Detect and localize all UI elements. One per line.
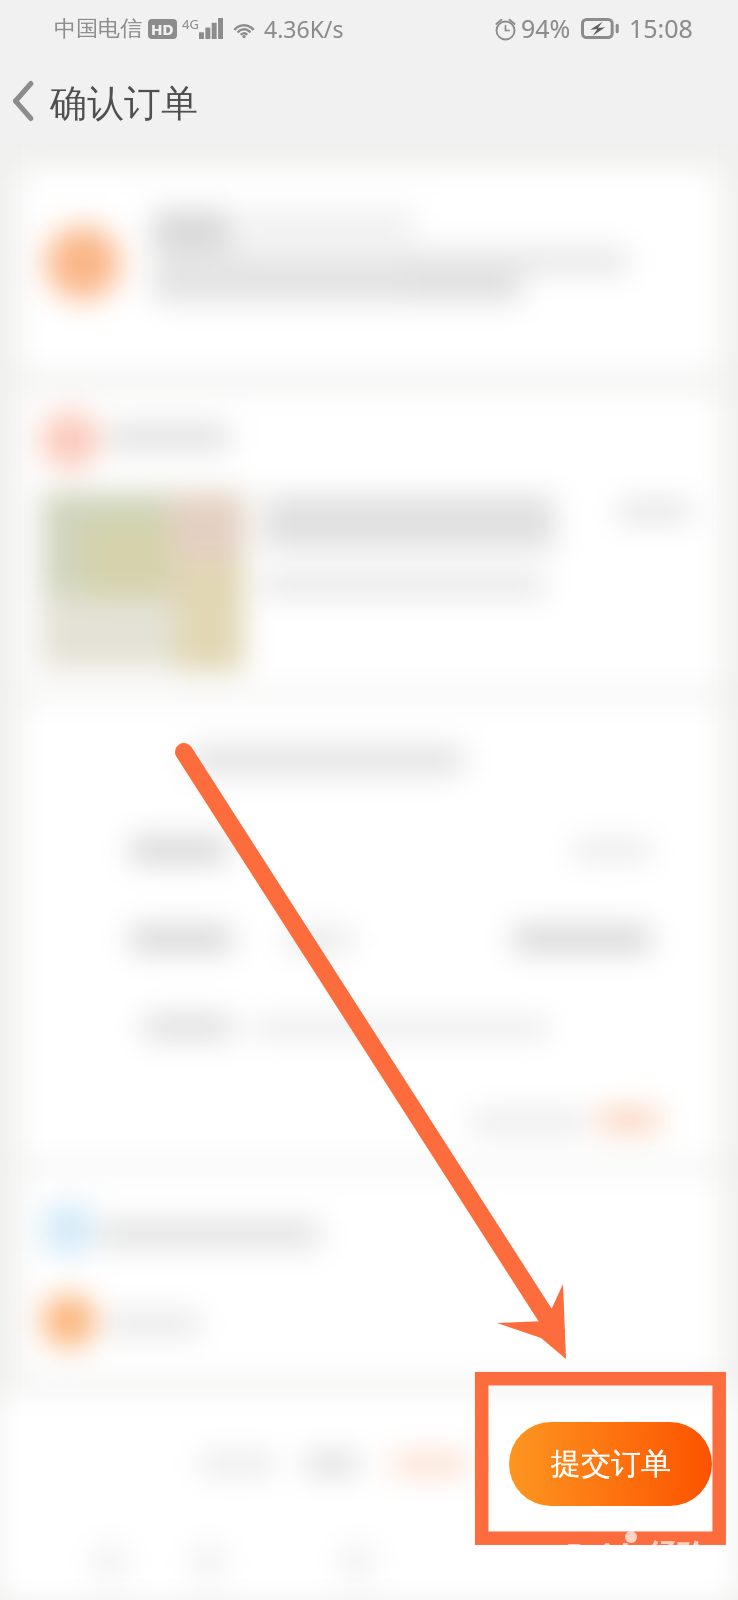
staticText: 4G bbox=[182, 15, 199, 33]
staticText: 4.36K/s bbox=[264, 13, 344, 44]
button[interactable]: 返回 bbox=[0, 56, 48, 144]
button[interactable]: 提交订单 bbox=[509, 1422, 712, 1506]
staticText: 中国电信 bbox=[54, 15, 142, 43]
staticText: 15:08 bbox=[629, 11, 693, 45]
staticText: 确认订单 bbox=[50, 80, 198, 127]
staticText: HD bbox=[151, 19, 174, 39]
staticText: Baidu经验 bbox=[566, 1534, 707, 1574]
staticText: 提交订单 bbox=[551, 1445, 671, 1483]
staticText: 94% bbox=[521, 11, 571, 45]
